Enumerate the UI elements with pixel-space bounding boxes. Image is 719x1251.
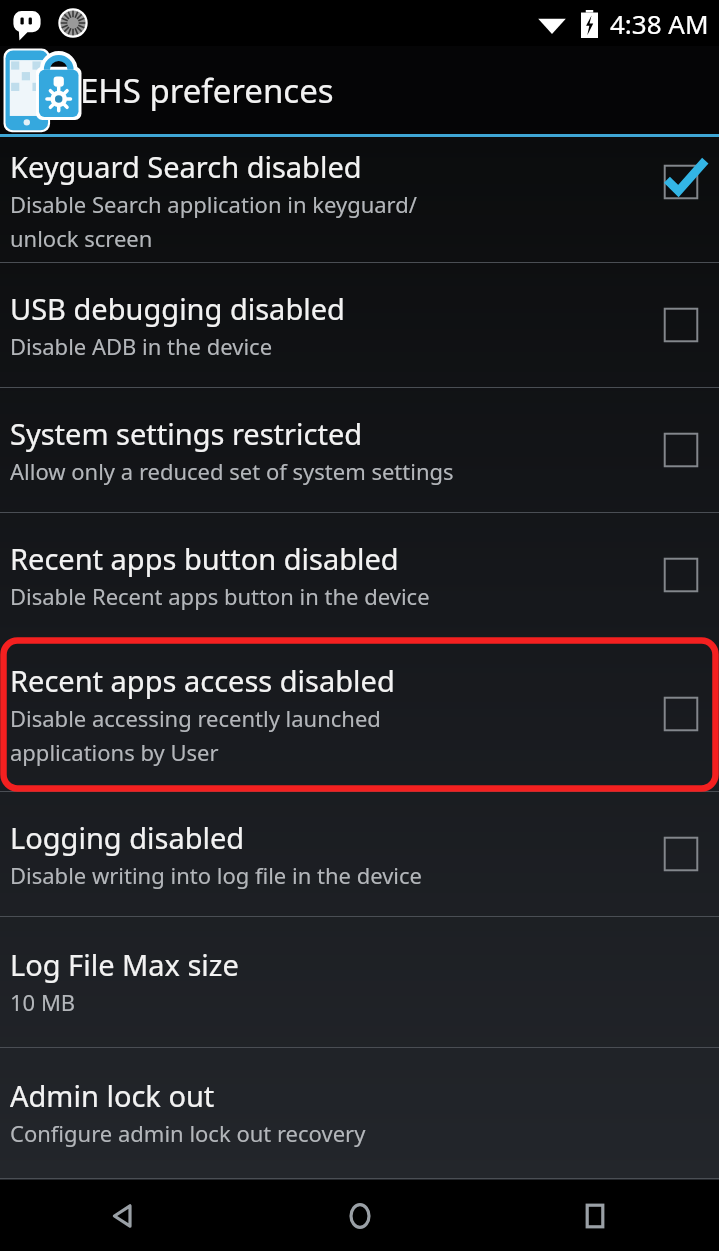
button[interactable]: EHS preferences <box>0 46 719 134</box>
button[interactable]: Back <box>96 1188 152 1244</box>
staticText: Recent apps access disabled <box>10 661 395 700</box>
staticText: System settings restricted <box>10 414 363 453</box>
staticText: Disable writing into log file in the dev… <box>10 860 422 890</box>
staticText: 10 MB <box>10 987 76 1017</box>
button[interactable]: System settings restricted <box>0 388 719 512</box>
staticText: Configure admin lock out recovery <box>10 1118 366 1148</box>
button[interactable]: Home <box>332 1188 388 1244</box>
button[interactable]: Recent apps button disabled <box>0 513 719 637</box>
staticText: 4:38 AM <box>610 6 709 41</box>
button[interactable] <box>657 830 705 878</box>
button[interactable]: Keyguard Search disabled <box>0 137 719 262</box>
button[interactable] <box>657 301 705 349</box>
staticText: Admin lock out <box>10 1076 215 1115</box>
staticText: Allow only a reduced set of system setti… <box>10 456 454 486</box>
button[interactable]: Recent apps access disabled <box>0 637 719 791</box>
staticText: Disable accessing recently launched appl… <box>10 703 381 767</box>
staticText: Logging disabled <box>10 818 245 857</box>
button[interactable]: USB debugging disabled <box>0 263 719 387</box>
button[interactable]: Recent apps <box>567 1188 623 1244</box>
staticText: USB debugging disabled <box>10 289 345 328</box>
button[interactable] <box>657 551 705 599</box>
button[interactable] <box>657 426 705 474</box>
button[interactable] <box>657 158 705 206</box>
staticText: Disable Search application in keyguard/ … <box>10 189 417 253</box>
staticText: Log File Max size <box>10 945 239 984</box>
staticText: Disable ADB in the device <box>10 331 273 361</box>
button[interactable]: Admin lock out <box>0 1048 719 1178</box>
staticText: Disable Recent apps button in the device <box>10 581 430 611</box>
button[interactable]: Log File Max size <box>0 917 719 1047</box>
button[interactable]: Logging disabled <box>0 792 719 916</box>
staticText: Keyguard Search disabled <box>10 147 362 186</box>
staticText: Recent apps button disabled <box>10 539 399 578</box>
staticText: EHS preferences <box>80 68 334 113</box>
button[interactable] <box>657 690 705 738</box>
